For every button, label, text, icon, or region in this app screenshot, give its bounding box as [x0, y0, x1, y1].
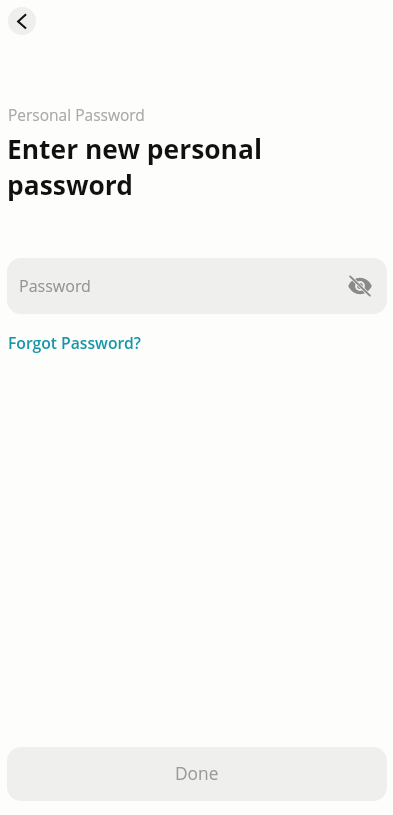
- button[interactable]: Forgot Password?: [8, 332, 141, 353]
- button[interactable]: Back: [8, 7, 36, 35]
- button[interactable]: Show password: [343, 269, 377, 303]
- staticText: Password: [19, 275, 91, 297]
- button[interactable]: Password: [7, 258, 387, 314]
- staticText: Enter new personal password: [7, 131, 330, 203]
- staticText: Personal Password: [8, 104, 145, 125]
- button[interactable]: Done: [7, 747, 387, 801]
- staticText: Forgot Password?: [8, 332, 141, 353]
- staticText: Done: [175, 762, 219, 786]
